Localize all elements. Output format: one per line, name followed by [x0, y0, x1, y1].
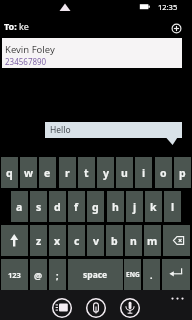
staticText: .	[150, 269, 153, 281]
button[interactable]: u	[116, 157, 133, 188]
staticText: j	[133, 200, 137, 214]
staticText: q	[6, 166, 13, 180]
staticText: y	[103, 166, 109, 180]
button[interactable]	[162, 259, 190, 290]
staticText: Kevin Foley	[5, 43, 55, 56]
staticText: Hello	[50, 124, 71, 136]
staticText: ENG	[126, 270, 140, 279]
button[interactable]: Kevin Foley	[2, 38, 182, 68]
button[interactable]: t	[78, 157, 95, 188]
staticText: l	[171, 200, 175, 214]
staticText: h	[112, 200, 119, 214]
button[interactable]: w	[20, 157, 37, 188]
staticText: 123	[8, 270, 21, 280]
button[interactable]: b	[106, 225, 123, 256]
button[interactable]: l	[164, 191, 181, 222]
button[interactable]: s	[30, 191, 47, 222]
button[interactable]: .	[143, 259, 160, 290]
staticText: n	[130, 234, 137, 248]
button[interactable]: y	[97, 157, 114, 188]
button[interactable]: space	[68, 259, 123, 290]
button[interactable]: o	[155, 157, 172, 188]
staticText: b	[111, 234, 118, 248]
button[interactable]: n	[125, 225, 142, 256]
staticText: ;	[56, 269, 59, 281]
staticText: a	[16, 200, 23, 214]
button[interactable]: r	[59, 157, 76, 188]
button[interactable]	[51, 297, 73, 319]
button[interactable]: z	[30, 225, 47, 256]
button[interactable]: f	[68, 191, 85, 222]
button[interactable]: x	[49, 225, 66, 256]
staticText: k	[150, 200, 157, 214]
button[interactable]: d	[49, 191, 66, 222]
staticText: r	[65, 166, 70, 180]
button[interactable]: @	[30, 259, 47, 290]
staticText: z	[36, 234, 42, 248]
button[interactable]: v	[87, 225, 104, 256]
button[interactable]: h	[107, 191, 124, 222]
button[interactable]: i	[135, 157, 152, 188]
staticText: ke	[19, 20, 29, 32]
staticText: To:	[4, 20, 17, 32]
staticText: u	[121, 166, 128, 180]
button[interactable]: k	[145, 191, 162, 222]
button[interactable]	[163, 225, 190, 256]
staticText: t	[84, 166, 89, 180]
button[interactable]	[119, 297, 141, 319]
button[interactable]: c	[68, 225, 85, 256]
staticText: m	[147, 234, 158, 248]
staticText: d	[54, 200, 61, 214]
button[interactable]: q	[1, 157, 18, 188]
staticText: i	[142, 166, 146, 180]
button[interactable]: ENG	[124, 259, 141, 290]
staticText: p	[179, 166, 186, 180]
staticText: x	[54, 234, 61, 248]
staticText: @	[34, 269, 43, 281]
staticText: o	[160, 166, 167, 180]
button[interactable]: a	[11, 191, 28, 222]
staticText: s	[36, 200, 42, 214]
button[interactable]: Hello	[45, 122, 182, 138]
staticText: e	[44, 166, 51, 180]
staticText: c	[74, 234, 80, 248]
staticText: 234567890	[5, 56, 47, 67]
button[interactable]: j	[126, 191, 143, 222]
button[interactable]: e	[39, 157, 56, 188]
staticText: 12:35	[158, 2, 178, 12]
button[interactable]: p	[174, 157, 191, 188]
staticText: f	[74, 200, 79, 214]
button[interactable]	[85, 297, 107, 319]
button[interactable]: 123	[1, 259, 28, 290]
button[interactable]: m	[144, 225, 161, 256]
button[interactable]	[169, 21, 184, 36]
button[interactable]	[1, 225, 28, 256]
staticText: w	[24, 166, 33, 180]
button[interactable]: ;	[49, 259, 66, 290]
button[interactable]	[168, 292, 188, 305]
button[interactable]: g	[87, 191, 104, 222]
staticText: v	[93, 234, 99, 248]
staticText: space	[83, 269, 108, 281]
staticText: g	[92, 200, 99, 214]
